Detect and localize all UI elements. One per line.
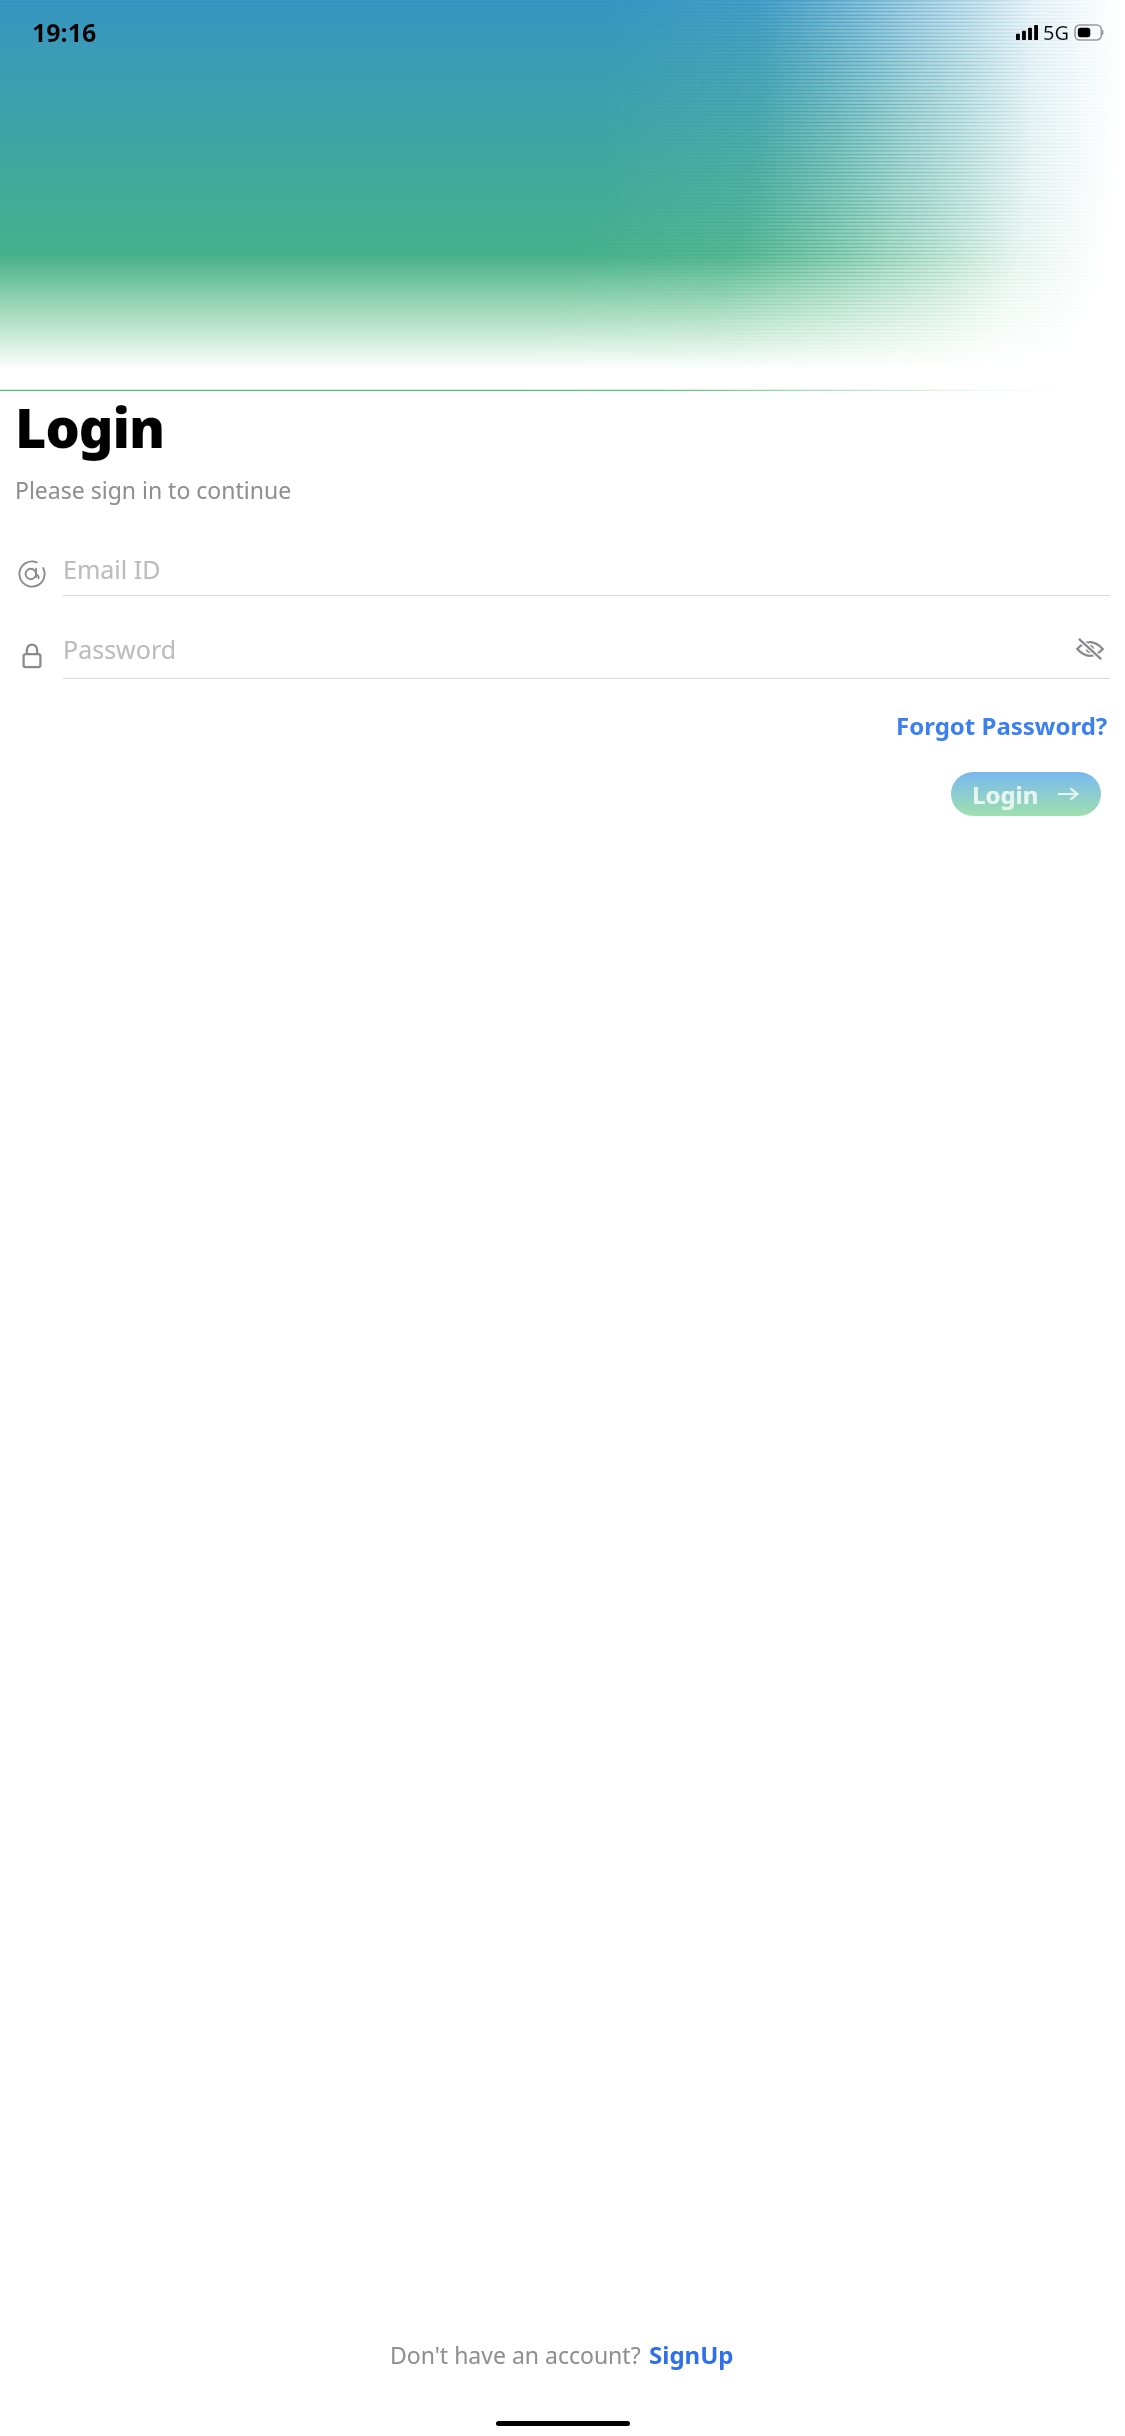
staticText: Forgot Password? bbox=[896, 709, 1108, 742]
staticText: Password bbox=[63, 632, 177, 666]
staticText: SignUp bbox=[649, 2338, 734, 2371]
staticText: Please sign in to continue bbox=[15, 474, 292, 505]
staticText: 19:16 bbox=[32, 15, 97, 49]
button[interactable]: Email bbox=[15, 545, 1110, 603]
button[interactable]: Toggle password visibility bbox=[1070, 629, 1110, 669]
button[interactable]: Forgot Password? bbox=[894, 705, 1110, 746]
button[interactable]: Login bbox=[951, 772, 1101, 816]
button[interactable]: Password bbox=[15, 625, 1110, 683]
staticText: Email ID bbox=[63, 552, 161, 586]
button[interactable]: SignUp bbox=[647, 2335, 736, 2374]
staticText: Login bbox=[972, 778, 1039, 811]
staticText: Don't have an account? bbox=[390, 2339, 647, 2370]
staticText: 5G bbox=[1043, 19, 1069, 46]
staticText: Login bbox=[15, 390, 165, 464]
other: Password bbox=[15, 637, 49, 671]
other: Email bbox=[15, 557, 49, 591]
